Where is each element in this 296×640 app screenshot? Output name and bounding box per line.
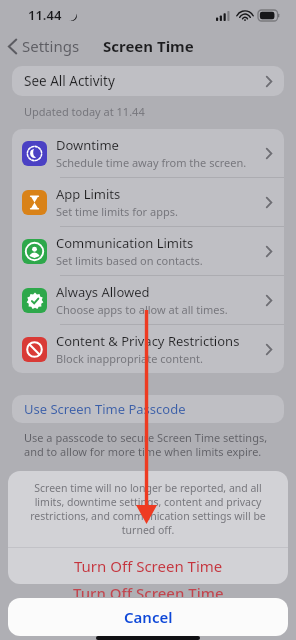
- staticText: See All Activity: [24, 72, 115, 90]
- staticText: Schedule time away from the screen.: [56, 155, 247, 170]
- staticText: Block inappropriate content.: [56, 351, 203, 366]
- staticText: Cancel: [124, 607, 173, 627]
- button[interactable]: App Limits: [12, 178, 284, 226]
- staticText: Use a passcode to secure Screen Time set…: [24, 430, 276, 459]
- staticText: Set time limits for apps.: [56, 204, 178, 219]
- staticText: Updated today at 11.44: [24, 104, 145, 119]
- staticText: Content & Privacy Restrictions: [56, 332, 240, 350]
- staticText: App Limits: [56, 185, 121, 203]
- staticText: Set limits based on contacts.: [56, 253, 203, 268]
- staticText: Use Screen Time Passcode: [24, 400, 186, 418]
- staticText: Communication Limits: [56, 234, 194, 252]
- button[interactable]: Cancel: [8, 598, 288, 636]
- button[interactable]: Downtime: [12, 129, 284, 177]
- staticText: Downtime: [56, 136, 119, 154]
- staticText: Screen time will no longer be reported, …: [22, 481, 274, 537]
- button[interactable]: See All Activity: [12, 66, 284, 96]
- button[interactable]: Content & Privacy Restrictions: [12, 325, 284, 373]
- staticText: Turn Off Screen Time: [73, 583, 224, 597]
- button[interactable]: Turn Off Screen Time: [8, 548, 288, 584]
- staticText: 11.44: [28, 6, 62, 24]
- button[interactable]: Communication Limits: [12, 227, 284, 275]
- button[interactable]: Use Screen Time Passcode: [12, 395, 284, 423]
- button[interactable]: Always Allowed: [12, 276, 284, 324]
- staticText: Turn Off Screen Time: [74, 556, 223, 576]
- staticText: Always Allowed: [56, 283, 150, 301]
- button[interactable]: Settings: [0, 32, 88, 60]
- staticText: Screen Time: [103, 36, 194, 56]
- staticText: Choose apps to allow at all times.: [56, 302, 228, 317]
- staticText: Settings: [22, 36, 80, 56]
